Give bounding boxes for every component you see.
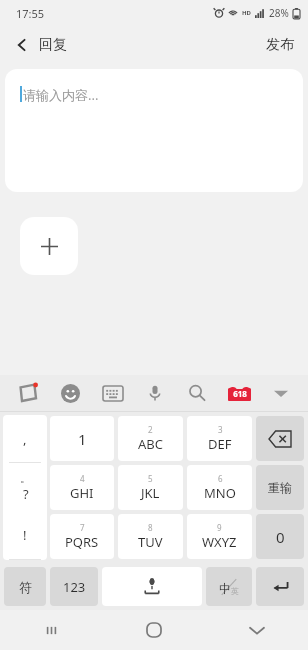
staticText: WXYZ xyxy=(202,533,237,551)
staticText: 7 xyxy=(80,522,85,533)
staticText: PQRS xyxy=(65,533,99,551)
staticText: DEF xyxy=(208,435,232,453)
button[interactable]: Recents xyxy=(0,610,102,650)
staticText: 4 xyxy=(80,473,85,484)
staticText: 3 xyxy=(218,424,223,435)
button[interactable]: 123 xyxy=(50,567,98,606)
staticText: 6 xyxy=(218,473,223,484)
button[interactable]: Search xyxy=(176,375,218,411)
button[interactable]: 9 xyxy=(187,514,252,559)
button[interactable]: 3 xyxy=(187,416,252,461)
button[interactable]: Sogou xyxy=(6,375,49,411)
button[interactable]: 。 xyxy=(3,463,47,511)
staticText: ! xyxy=(23,526,27,544)
staticText: 重输 xyxy=(268,480,292,495)
other: Back xyxy=(14,37,30,53)
button[interactable]: 618 promo xyxy=(218,375,260,411)
staticText: MNO xyxy=(204,484,236,502)
staticText: 符 xyxy=(19,579,32,595)
button[interactable]: Back xyxy=(0,36,77,54)
staticText: GHI xyxy=(70,484,94,502)
button[interactable]: 5 xyxy=(118,465,183,510)
staticText: 发布 xyxy=(266,36,294,54)
staticText: 17:55 xyxy=(16,6,45,21)
staticText: HD xyxy=(242,9,251,17)
staticText: 9 xyxy=(217,522,222,533)
button[interactable]: 0 xyxy=(256,514,304,559)
staticText: 2 xyxy=(148,424,153,435)
button[interactable]: 6 xyxy=(187,465,252,510)
button[interactable]: 发布 xyxy=(252,30,308,60)
staticText: 8 xyxy=(148,522,153,533)
staticText: 请输入内容... xyxy=(23,86,99,104)
button[interactable]: Voice input xyxy=(134,375,176,411)
button[interactable]: , xyxy=(3,415,47,462)
button[interactable]: 中 xyxy=(206,567,252,606)
button[interactable]: 请输入内容... xyxy=(5,69,303,192)
staticText: 0 xyxy=(276,527,285,547)
staticText: 英 xyxy=(231,586,239,596)
button[interactable]: 符 xyxy=(4,567,46,606)
button[interactable]: Hide keyboard xyxy=(205,610,308,650)
button[interactable]: Backspace xyxy=(256,416,304,461)
staticText: 中 xyxy=(219,581,231,596)
staticText: 618 xyxy=(233,388,247,399)
button[interactable]: 1 xyxy=(50,416,114,461)
button[interactable]: Emoji xyxy=(49,375,92,411)
button[interactable]: 4 xyxy=(50,465,114,510)
staticText: 123 xyxy=(63,578,86,596)
staticText: 回复 xyxy=(39,36,67,54)
button[interactable]: ! xyxy=(3,511,47,559)
staticText: JKL xyxy=(141,484,160,502)
button[interactable]: Home xyxy=(102,610,205,650)
staticText: TUV xyxy=(138,533,163,551)
button[interactable]: 8 xyxy=(118,514,183,559)
button[interactable]: Add image xyxy=(20,217,78,275)
button[interactable]: Space xyxy=(102,567,202,606)
button[interactable]: Keyboard xyxy=(92,375,134,411)
staticText: 。 xyxy=(20,471,31,485)
button[interactable]: 重输 xyxy=(256,465,304,510)
staticText: 1 xyxy=(78,429,87,449)
staticText: 28% xyxy=(269,6,289,20)
button[interactable]: Enter xyxy=(256,567,304,606)
staticText: ? xyxy=(23,485,29,503)
button[interactable]: Collapse keyboard xyxy=(260,375,302,411)
staticText: ABC xyxy=(138,435,163,453)
staticText: , xyxy=(23,430,27,448)
button[interactable]: 2 xyxy=(118,416,183,461)
staticText: 5 xyxy=(148,473,153,484)
button[interactable]: 7 xyxy=(50,514,114,559)
